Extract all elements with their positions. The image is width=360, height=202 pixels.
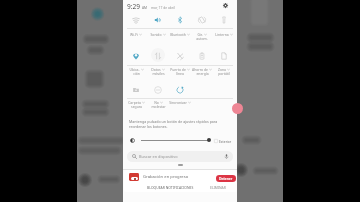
button[interactable]: Wi-Fi bbox=[125, 32, 147, 37]
staticText: ción bbox=[133, 71, 140, 76]
staticText: Bluetooth bbox=[170, 32, 186, 37]
staticText: móviles bbox=[152, 71, 165, 76]
staticText: energía bbox=[196, 71, 209, 76]
staticText: Datos bbox=[151, 67, 161, 72]
staticText: Sincronizar bbox=[169, 100, 187, 105]
button[interactable]: Ahorro de bbox=[191, 67, 213, 77]
button[interactable]: Detener bbox=[216, 175, 236, 182]
button[interactable]: Buscar en dispositivo bbox=[127, 151, 233, 162]
staticText: No bbox=[154, 100, 159, 105]
button[interactable]: ELIMINAR bbox=[205, 183, 231, 191]
staticText: Ahorro de bbox=[192, 67, 208, 72]
staticText: segura bbox=[131, 104, 142, 109]
staticText: Ubica- bbox=[129, 67, 140, 72]
staticText: mar, 17 de abril bbox=[151, 5, 175, 9]
button[interactable]: Sincronizar bbox=[169, 100, 191, 105]
staticText: ELIMINAR bbox=[210, 185, 226, 190]
staticText: autom. bbox=[196, 36, 208, 41]
staticText: 9:29 bbox=[127, 2, 141, 11]
button[interactable]: BLOQUEAR NOTIFICACIONES bbox=[138, 183, 202, 191]
staticText: BLOQUEAR NOTIFICACIONES bbox=[147, 185, 194, 190]
button[interactable]: Puerto de bbox=[169, 67, 191, 77]
staticText: molestar bbox=[151, 104, 166, 109]
staticText: Carpeta bbox=[128, 100, 141, 105]
button[interactable] bbox=[124, 170, 237, 183]
button[interactable]: Bluetooth bbox=[169, 32, 191, 37]
staticText: Sonido bbox=[150, 32, 162, 37]
staticText: línea bbox=[176, 71, 184, 76]
staticText: Gir. bbox=[197, 32, 203, 37]
staticText: AM bbox=[142, 5, 148, 9]
staticText: Grabación en progreso bbox=[143, 174, 189, 180]
staticText: Mantenga pulsado un botón de ajustes ráp… bbox=[129, 119, 218, 129]
staticText: Buscar en dispositivo bbox=[139, 154, 178, 159]
staticText: Zona bbox=[218, 67, 226, 72]
button[interactable]: Zona bbox=[213, 67, 235, 77]
staticText: portátil bbox=[218, 71, 230, 76]
staticText: Wi-Fi bbox=[130, 32, 138, 37]
staticText: Puerto de bbox=[170, 67, 186, 72]
button[interactable]: Settings bbox=[220, 0, 231, 11]
staticText: Detener bbox=[219, 176, 233, 181]
staticText: Linterna bbox=[215, 32, 229, 37]
button[interactable]: No bbox=[147, 100, 169, 110]
button[interactable]: Brightness bbox=[138, 136, 213, 145]
button[interactable]: Datos bbox=[147, 67, 169, 77]
button[interactable]: Sonido bbox=[147, 32, 169, 37]
button[interactable]: Carpeta bbox=[125, 100, 147, 110]
button[interactable]: Exterior bbox=[214, 137, 232, 145]
button[interactable]: Gir. bbox=[191, 32, 213, 42]
staticText: Exterior bbox=[219, 139, 232, 143]
button[interactable]: Linterna bbox=[213, 32, 235, 37]
button[interactable]: Ubica- bbox=[125, 67, 147, 77]
